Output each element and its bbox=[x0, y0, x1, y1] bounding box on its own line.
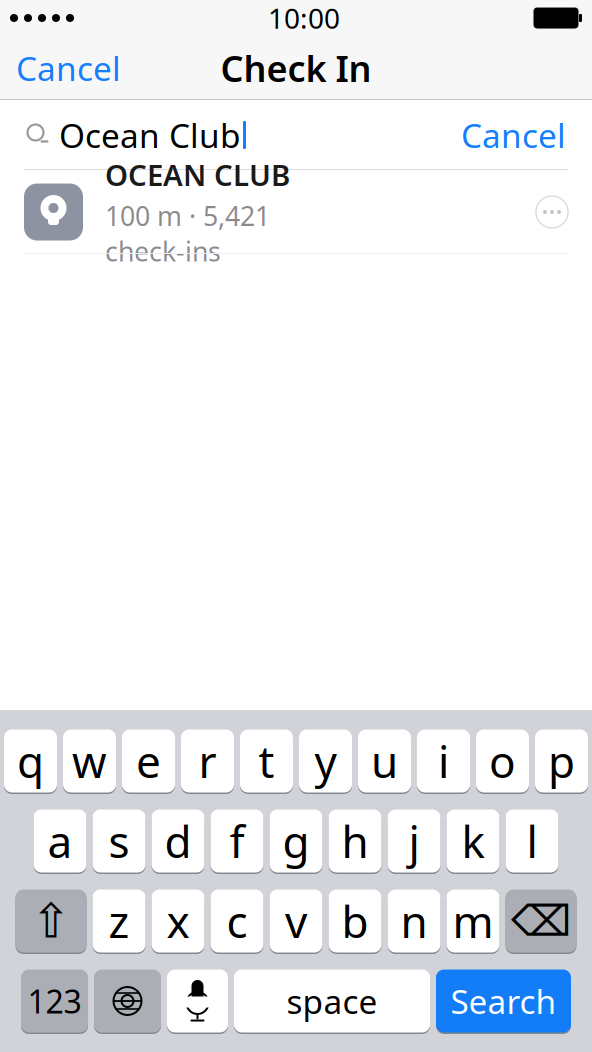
button[interactable]: Delete bbox=[505, 888, 576, 954]
button[interactable]: o bbox=[476, 728, 529, 794]
staticText: v bbox=[285, 892, 307, 950]
button[interactable]: Dictate bbox=[167, 968, 228, 1034]
staticText: q bbox=[17, 732, 44, 790]
button[interactable]: c bbox=[210, 888, 263, 954]
button[interactable]: Cancel bbox=[447, 103, 580, 167]
button[interactable]: e bbox=[122, 728, 175, 794]
button[interactable]: j bbox=[387, 808, 440, 874]
button[interactable]: i bbox=[417, 728, 470, 794]
button[interactable]: Cancel bbox=[0, 36, 137, 100]
button[interactable]: f bbox=[210, 808, 263, 874]
staticText: Ocean Club bbox=[59, 113, 241, 157]
staticText: Cancel bbox=[16, 46, 121, 90]
button[interactable]: v bbox=[269, 888, 322, 954]
staticText: j bbox=[408, 812, 419, 870]
button[interactable]: Shift bbox=[15, 888, 86, 954]
staticText: c bbox=[226, 892, 247, 950]
staticText: y bbox=[314, 732, 336, 790]
button[interactable]: t bbox=[240, 728, 293, 794]
staticText: d bbox=[164, 812, 191, 870]
button[interactable]: k bbox=[446, 808, 499, 874]
staticText: p bbox=[548, 732, 575, 790]
button[interactable]: u bbox=[358, 728, 411, 794]
staticText: x bbox=[166, 892, 189, 950]
button[interactable]: n bbox=[387, 888, 440, 954]
staticText: w bbox=[72, 732, 107, 790]
staticText: f bbox=[229, 812, 244, 870]
staticText: 123 bbox=[27, 980, 81, 1022]
staticText: OCEAN CLUB bbox=[105, 155, 290, 194]
button[interactable]: 123 bbox=[21, 968, 88, 1034]
staticText: r bbox=[198, 732, 216, 790]
staticText: n bbox=[400, 892, 427, 950]
staticText: t bbox=[258, 732, 274, 790]
button[interactable]: Next keyboard bbox=[94, 968, 161, 1034]
button[interactable]: OCEAN CLUB bbox=[0, 170, 592, 254]
button[interactable]: g bbox=[269, 808, 322, 874]
staticText: Search bbox=[450, 979, 556, 1023]
staticText: ⇧ bbox=[31, 894, 71, 948]
staticText: h bbox=[341, 812, 368, 870]
staticText: 100 m · 5,421 check-ins bbox=[105, 198, 270, 269]
staticText: i bbox=[438, 732, 449, 790]
staticText: o bbox=[489, 732, 516, 790]
button[interactable]: m bbox=[446, 888, 499, 954]
staticText: m bbox=[452, 892, 493, 950]
staticText: e bbox=[136, 732, 161, 790]
staticText: space bbox=[286, 979, 377, 1023]
button[interactable]: space bbox=[234, 968, 430, 1034]
button[interactable]: p bbox=[535, 728, 588, 794]
button[interactable]: y bbox=[299, 728, 352, 794]
staticText: s bbox=[108, 812, 129, 870]
button[interactable]: q bbox=[4, 728, 57, 794]
staticText: 10:00 bbox=[268, 0, 340, 37]
button[interactable]: r bbox=[181, 728, 234, 794]
staticText: Cancel bbox=[461, 113, 566, 157]
button[interactable]: w bbox=[63, 728, 116, 794]
button[interactable]: a bbox=[33, 808, 86, 874]
button[interactable]: d bbox=[151, 808, 204, 874]
staticText: ⌫ bbox=[511, 897, 571, 945]
button[interactable]: h bbox=[328, 808, 381, 874]
staticText: a bbox=[47, 812, 72, 870]
button[interactable]: s bbox=[92, 808, 145, 874]
button[interactable]: z bbox=[92, 888, 145, 954]
staticText: k bbox=[461, 812, 484, 870]
staticText: Check In bbox=[220, 44, 371, 92]
button[interactable]: Search bbox=[436, 968, 571, 1034]
staticText: b bbox=[341, 892, 368, 950]
staticText: z bbox=[108, 892, 129, 950]
staticText: g bbox=[282, 812, 309, 870]
staticText: l bbox=[526, 812, 537, 870]
button[interactable]: x bbox=[151, 888, 204, 954]
staticText: u bbox=[371, 732, 398, 790]
button[interactable]: l bbox=[505, 808, 558, 874]
button[interactable]: b bbox=[328, 888, 381, 954]
